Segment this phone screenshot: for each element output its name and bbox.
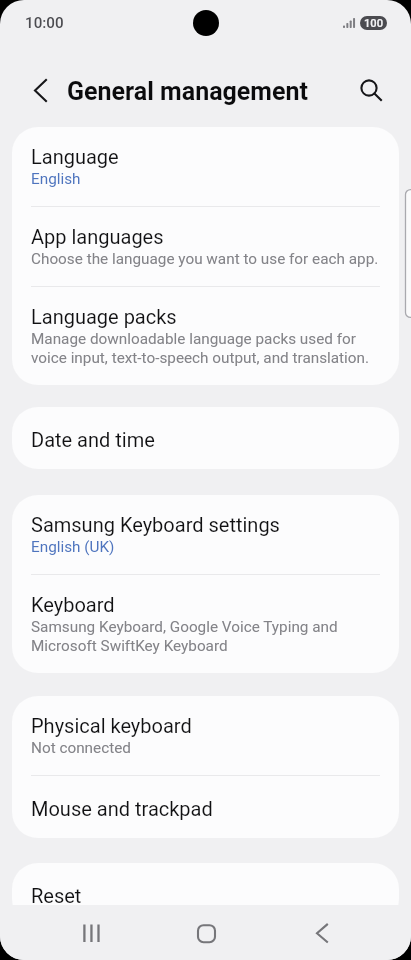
button[interactable]: Physical keyboard — [12, 696, 399, 775]
staticText: Reset — [31, 884, 82, 908]
staticText: Mouse and trackpad — [31, 797, 213, 821]
staticText: Manage downloadable language packs used … — [31, 329, 380, 367]
staticText: Samsung Keyboard settings — [31, 513, 280, 537]
staticText: Language — [31, 145, 119, 169]
button[interactable]: Samsung Keyboard settings — [12, 495, 399, 574]
staticText: 10:00 — [25, 14, 64, 32]
staticText: Keyboard — [31, 593, 115, 617]
button[interactable]: Home — [175, 915, 237, 951]
button[interactable]: Back — [291, 915, 353, 951]
staticText: Language packs — [31, 305, 177, 329]
button[interactable]: Search — [349, 68, 393, 112]
button[interactable]: Mouse and trackpad — [12, 776, 399, 838]
staticText: Not connected — [31, 738, 131, 757]
button[interactable]: Language packs — [12, 287, 399, 385]
button[interactable]: Keyboard — [12, 575, 399, 673]
staticText: 100 — [364, 17, 384, 30]
staticText: Physical keyboard — [31, 714, 192, 738]
staticText: App languages — [31, 225, 164, 249]
button[interactable]: Date and time — [12, 407, 399, 469]
staticText: Choose the language you want to use for … — [31, 249, 379, 268]
button[interactable]: Language — [12, 127, 399, 206]
button[interactable]: Reset — [12, 863, 399, 925]
staticText: General management — [67, 77, 308, 106]
staticText: English — [31, 169, 81, 188]
staticText: Date and time — [31, 428, 155, 452]
button[interactable]: App languages — [12, 207, 399, 286]
staticText: Samsung Keyboard, Google Voice Typing an… — [31, 617, 380, 655]
button[interactable]: Navigate up — [18, 68, 62, 112]
staticText: English (UK) — [31, 537, 115, 556]
button[interactable]: Recents — [60, 915, 122, 951]
